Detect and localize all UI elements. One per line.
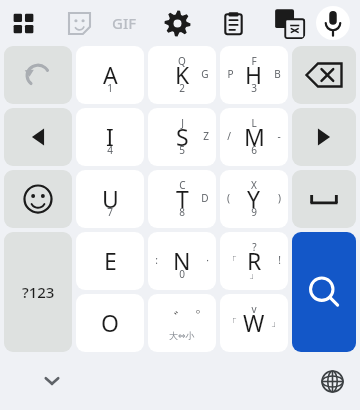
button[interactable]: R [220, 232, 288, 290]
staticText: E [104, 245, 117, 276]
button[interactable]: T [148, 170, 216, 228]
button[interactable]: W [220, 294, 288, 352]
button[interactable]: Move cursor left [4, 108, 72, 166]
staticText: A [103, 59, 118, 90]
staticText: C [179, 178, 186, 192]
staticText: 7 [107, 205, 113, 219]
button[interactable]: Symbols [4, 232, 72, 352]
button[interactable]: App grid [6, 6, 40, 40]
staticText: 8 [179, 205, 185, 219]
button[interactable]: Space [292, 170, 356, 228]
button[interactable]: K [148, 46, 216, 104]
staticText: v [251, 302, 257, 316]
button[interactable]: Undo [4, 46, 72, 104]
staticText: Z [203, 129, 209, 143]
staticText: O [101, 307, 119, 338]
button[interactable]: Clipboard [216, 6, 250, 40]
staticText: W [243, 307, 265, 338]
button[interactable]: Search [292, 232, 356, 352]
staticText: M [244, 121, 265, 152]
button[interactable]: Y [220, 170, 288, 228]
staticText: / [227, 129, 231, 143]
staticText: - [277, 129, 281, 143]
staticText: 5 [179, 143, 185, 157]
button[interactable]: Move cursor right [292, 108, 356, 166]
staticText: 「 [227, 316, 237, 329]
staticText: Q [178, 54, 186, 68]
button[interactable]: Dakuten and size [148, 294, 216, 352]
staticText: K [175, 59, 190, 90]
button[interactable]: I [76, 108, 144, 166]
staticText: 9 [251, 205, 257, 219]
staticText: 1 [107, 81, 113, 95]
staticText: S [176, 121, 189, 152]
button[interactable]: GIF [104, 3, 144, 43]
staticText: 0 [179, 267, 185, 281]
staticText: Y [247, 183, 261, 214]
staticText: : [155, 253, 158, 267]
button[interactable]: U [76, 170, 144, 228]
button[interactable]: O [76, 294, 144, 352]
staticText: T [176, 183, 189, 214]
staticText: J [181, 116, 184, 130]
staticText: 」 [271, 316, 281, 329]
staticText: H [245, 59, 263, 90]
button[interactable]: N [148, 232, 216, 290]
staticText: 大⇔小 [169, 330, 195, 341]
button[interactable]: Change language [312, 361, 352, 401]
button[interactable]: Translate [272, 6, 306, 40]
staticText: 6 [251, 143, 257, 157]
staticText: ?123 [22, 282, 55, 302]
staticText: 」 [249, 268, 259, 281]
staticText: GIF [112, 13, 137, 33]
staticText: ! [278, 253, 281, 267]
staticText: F [251, 54, 257, 68]
button[interactable]: Backspace [292, 46, 356, 104]
staticText: N [173, 245, 191, 276]
staticText: D [201, 191, 209, 205]
button[interactable]: S [148, 108, 216, 166]
staticText: R [247, 245, 262, 276]
staticText: ? [252, 240, 257, 254]
button[interactable]: A [76, 46, 144, 104]
staticText: ) [278, 191, 281, 205]
staticText: ゛ ゜ [162, 306, 202, 329]
button[interactable]: M [220, 108, 288, 166]
staticText: ( [227, 191, 230, 205]
button[interactable]: Emoji [4, 170, 72, 228]
staticText: G [201, 67, 209, 81]
staticText: X [251, 178, 257, 192]
staticText: P [227, 67, 234, 81]
button[interactable]: E [76, 232, 144, 290]
staticText: U [102, 183, 119, 214]
staticText: I [106, 121, 114, 152]
button[interactable]: Stickers [62, 6, 96, 40]
button[interactable]: H [220, 46, 288, 104]
staticText: 3 [251, 81, 257, 95]
button[interactable]: Hide keyboard [32, 361, 72, 401]
staticText: 「 [227, 254, 237, 267]
staticText: 4 [107, 143, 113, 157]
staticText: 2 [179, 81, 185, 95]
staticText: B [274, 67, 281, 81]
staticText: L [251, 116, 257, 130]
staticText: · [206, 253, 209, 267]
button[interactable]: Settings [160, 6, 194, 40]
button[interactable]: Voice input [316, 6, 350, 40]
